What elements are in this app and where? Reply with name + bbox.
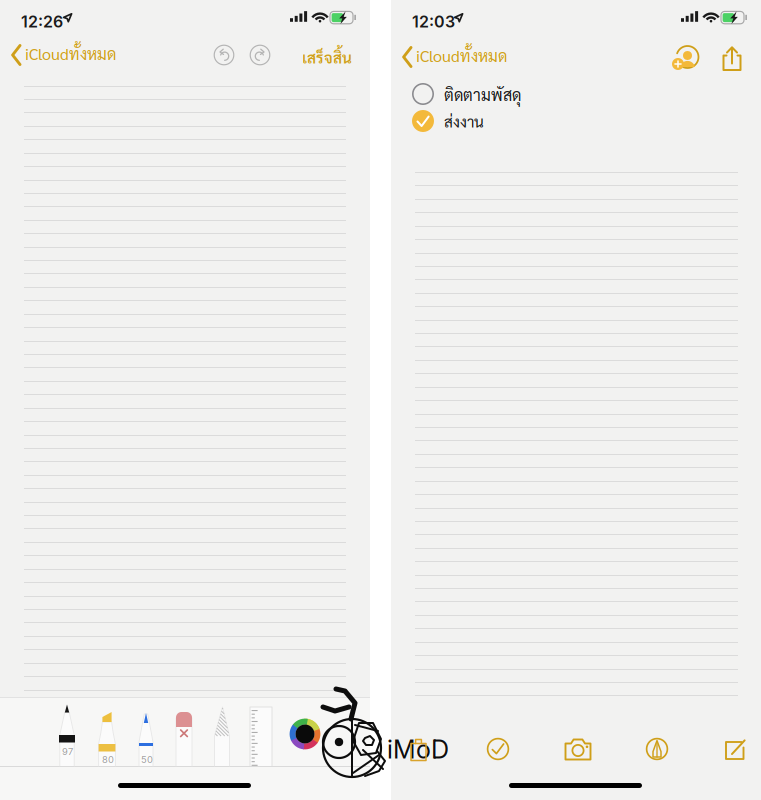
staticText: iCloudทั้งหมด [416, 45, 507, 66]
button[interactable]: Eraser [0, 0, 370, 800]
button[interactable]: เสร็จสิ้น [282, 41, 352, 73]
button[interactable]: Add People [670, 42, 702, 74]
button[interactable]: Colour [289, 718, 321, 750]
button[interactable]: Pen [0, 0, 370, 800]
staticText: iCloudทั้งหมด [25, 43, 116, 64]
staticText: ส่งงาน [444, 111, 484, 131]
button[interactable]: Highlighter [0, 0, 370, 800]
button[interactable]: iCloudทั้งหมด [0, 40, 150, 72]
staticText: 50 [141, 754, 153, 765]
button[interactable]: Lasso [0, 0, 370, 800]
staticText: 80 [102, 754, 114, 765]
button[interactable]: Ruler [0, 0, 370, 800]
staticText: 97 [62, 746, 73, 757]
staticText: 12:26 [21, 12, 63, 31]
button[interactable]: Undo [208, 39, 240, 71]
staticText: iMoD [387, 734, 449, 765]
button[interactable]: Markup [640, 732, 674, 766]
button[interactable]: Redo [244, 39, 276, 71]
button[interactable]: Share [716, 42, 748, 74]
button[interactable]: ส่งงาน [412, 108, 632, 134]
button[interactable]: Checklist [481, 732, 515, 766]
staticText: 12:03 [412, 12, 455, 31]
button[interactable]: Camera [561, 732, 595, 766]
staticText: ติดตามพัสดุ [444, 84, 521, 105]
button[interactable]: ติดตามพัสดุ [412, 81, 632, 107]
button[interactable]: New Note [718, 732, 752, 766]
staticText: เสร็จสิ้น [302, 47, 352, 67]
button[interactable]: Pencil [0, 0, 370, 800]
button[interactable]: iCloudทั้งหมด [391, 42, 541, 74]
